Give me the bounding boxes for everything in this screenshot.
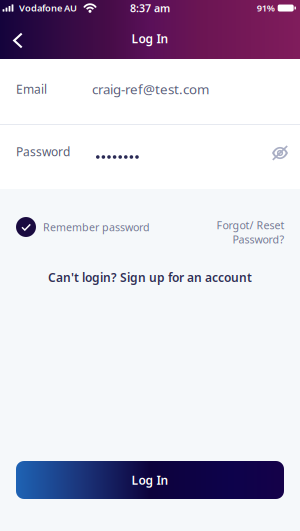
button[interactable]: Show password (272, 143, 288, 160)
button[interactable]: Log In (16, 461, 284, 499)
staticText: Password (16, 143, 70, 159)
staticText: craig-ref@test.com (92, 80, 209, 98)
staticText: Vodafone AU (19, 2, 77, 14)
staticText: Log In (131, 472, 168, 488)
staticText: Forgot/ Reset Password? (216, 218, 284, 246)
button[interactable]: Remember password (16, 217, 150, 237)
staticText: 91% (257, 2, 275, 14)
staticText: Can't login? Sign up for an account (48, 269, 252, 285)
staticText: Log In (131, 30, 168, 46)
button[interactable]: Can't login? Sign up for an account (32, 260, 268, 294)
staticText: Email (16, 81, 47, 97)
staticText: Remember password (43, 220, 150, 234)
button[interactable]: Back (0, 22, 35, 58)
button[interactable]: Forgot/ Reset Password? (216, 218, 284, 246)
staticText: 8:37 am (130, 1, 170, 15)
